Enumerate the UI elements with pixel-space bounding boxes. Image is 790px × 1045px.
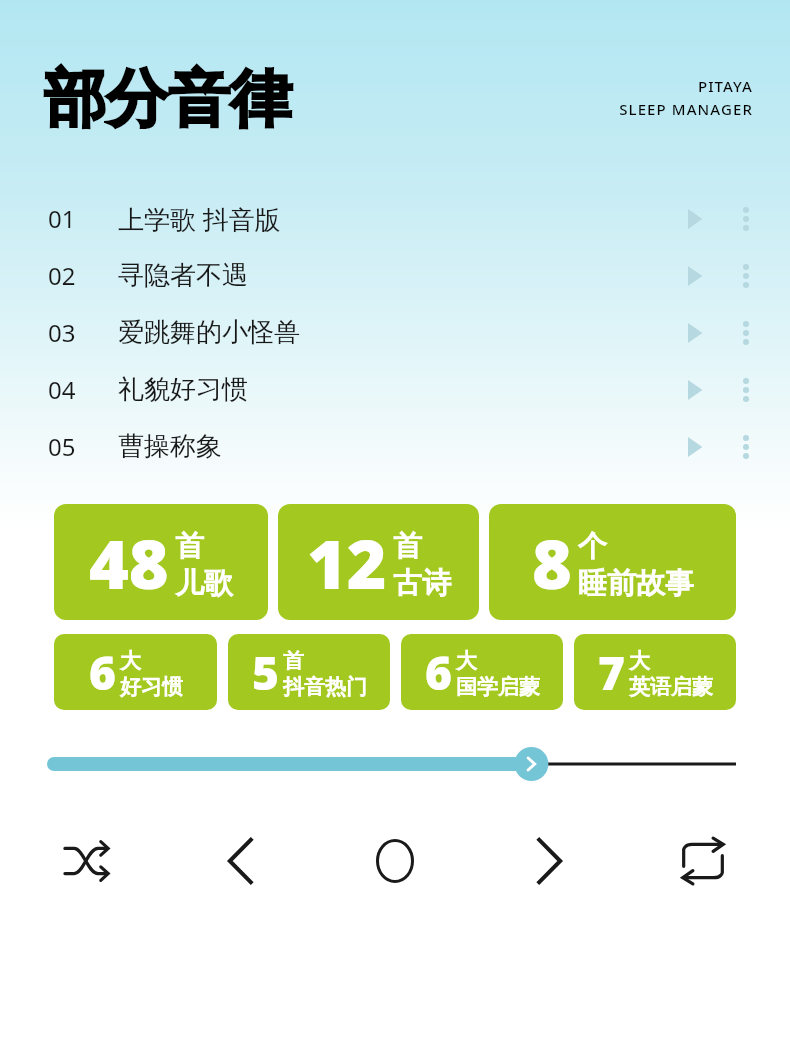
staticText: 抖音热门: [283, 674, 367, 700]
button[interactable]: 48: [54, 504, 268, 620]
staticText: 6: [425, 641, 452, 704]
button[interactable]: More options: [726, 256, 766, 296]
button[interactable]: 6: [54, 634, 217, 710]
button[interactable]: More options: [726, 427, 766, 467]
button[interactable]: 8: [489, 504, 736, 620]
button[interactable]: Play: [674, 370, 714, 410]
button[interactable]: 05: [0, 418, 790, 475]
staticText: 大: [120, 648, 141, 674]
button[interactable]: 12: [278, 504, 479, 620]
button[interactable]: 02: [0, 247, 790, 304]
button[interactable]: 6: [401, 634, 563, 710]
staticText: 8: [532, 516, 572, 609]
staticText: 个: [578, 528, 607, 565]
staticText: 好习惯: [120, 674, 183, 700]
staticText: 古诗: [393, 565, 451, 602]
staticText: 部分音律: [44, 60, 292, 138]
button[interactable]: More options: [726, 199, 766, 239]
staticText: 睡前故事: [578, 565, 694, 602]
button[interactable]: 04: [0, 361, 790, 418]
button[interactable]: Play: [674, 427, 714, 467]
button[interactable]: 5: [228, 634, 390, 710]
button[interactable]: Previous: [208, 828, 274, 894]
button[interactable]: Play: [674, 199, 714, 239]
staticText: 12: [307, 516, 387, 609]
button[interactable]: Next: [516, 828, 582, 894]
button[interactable]: 7: [574, 634, 736, 710]
staticText: 7: [598, 641, 625, 704]
staticText: 曹操称象: [118, 430, 222, 463]
staticText: PITAYA: [697, 76, 753, 96]
staticText: 儿歌: [175, 565, 233, 602]
staticText: 首: [283, 648, 304, 674]
staticText: 英语启蒙: [629, 674, 713, 700]
staticText: 首: [175, 528, 204, 565]
staticText: 寻隐者不遇: [118, 259, 248, 292]
button[interactable]: Playback progress: [54, 744, 736, 784]
staticText: 01: [48, 202, 76, 235]
staticText: 上学歌 抖音版: [118, 201, 281, 237]
button[interactable]: Play: [674, 313, 714, 353]
staticText: 05: [48, 430, 76, 463]
button[interactable]: Play: [674, 256, 714, 296]
staticText: 48: [89, 516, 169, 609]
staticText: 爱跳舞的小怪兽: [118, 316, 300, 349]
staticText: SLEEP MANAGER: [619, 99, 753, 119]
button[interactable]: Repeat: [670, 828, 736, 894]
button[interactable]: Play: [362, 828, 428, 894]
staticText: 首: [393, 528, 422, 565]
button[interactable]: More options: [726, 313, 766, 353]
staticText: 礼貌好习惯: [118, 373, 248, 406]
staticText: 6: [89, 641, 116, 704]
staticText: 大: [629, 648, 650, 674]
button[interactable]: Shuffle: [54, 828, 120, 894]
staticText: 04: [48, 373, 76, 406]
button[interactable]: 01: [0, 190, 790, 247]
staticText: 大: [456, 648, 477, 674]
staticText: 5: [252, 641, 279, 704]
staticText: 02: [48, 259, 76, 292]
button[interactable]: 03: [0, 304, 790, 361]
staticText: 03: [48, 316, 76, 349]
staticText: 国学启蒙: [456, 674, 540, 700]
button[interactable]: More options: [726, 370, 766, 410]
